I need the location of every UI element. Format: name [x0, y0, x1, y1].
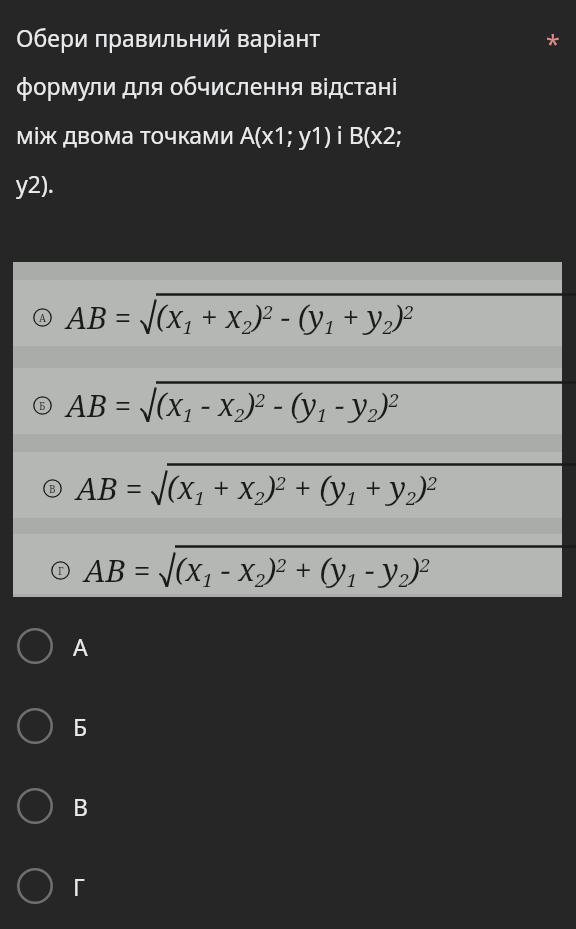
button[interactable]: Option Б: [0, 686, 576, 766]
staticText: Г: [58, 564, 64, 578]
staticText: А: [73, 631, 88, 662]
staticText: А: [39, 311, 47, 325]
staticText: *: [546, 26, 560, 60]
staticText: AB =: [66, 385, 132, 426]
staticText: AB =: [84, 549, 151, 591]
staticText: (x1 − x2)2 + (y1 − y2)2: [175, 548, 431, 592]
staticText: (x1 + x2)2 + (y1 + y2)2: [167, 466, 438, 510]
staticText: Б: [73, 711, 88, 742]
staticText: Б: [39, 399, 46, 413]
staticText: Обери правильний варіант формули для обч…: [16, 22, 403, 200]
staticText: AB =: [66, 297, 132, 338]
button[interactable]: Option В: [0, 766, 576, 846]
staticText: (x1 + x2)2 − (y1 + y2)2: [156, 296, 414, 339]
staticText: (x1 − x2)2 − (y1 − y2)2: [156, 384, 400, 427]
staticText: Г: [73, 871, 85, 902]
staticText: В: [73, 791, 88, 822]
button[interactable]: Option Г: [0, 846, 576, 926]
staticText: AB =: [76, 467, 143, 509]
button[interactable]: Option А: [0, 606, 576, 686]
staticText: В: [49, 482, 56, 496]
